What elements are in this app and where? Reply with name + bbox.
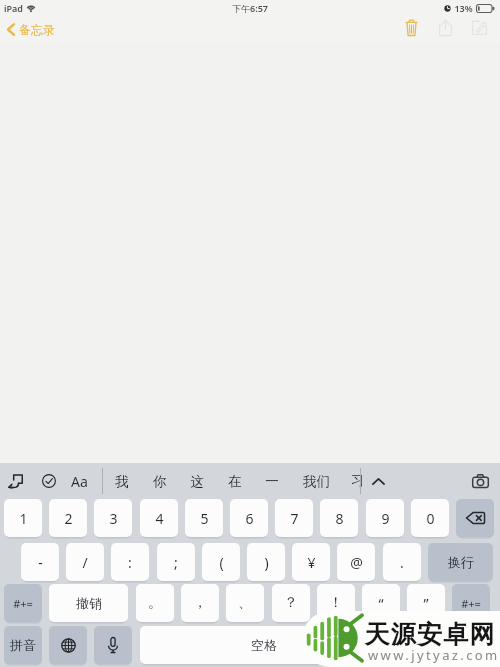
staticText: 备忘录 [19,22,55,37]
button[interactable]: 拼音 [4,626,42,664]
staticText: ; [174,553,178,572]
button[interactable]: 。 [136,584,174,622]
button[interactable]: ！ [317,584,355,622]
button[interactable]: 撤销 [49,584,128,622]
staticText: iPad [4,2,23,14]
staticText: - [38,553,43,572]
button[interactable]: ？ [272,584,310,622]
button[interactable]: : [111,543,149,581]
staticText: Aa [71,472,88,491]
button[interactable]: 空格 [140,626,388,664]
staticText: 、 [238,594,252,612]
staticText: #+= [13,596,33,611]
button[interactable]: / [66,543,104,581]
button[interactable]: Camera [460,463,500,499]
staticText: ” [423,594,429,613]
button[interactable]: ， [181,584,219,622]
button[interactable]: 我们 [299,463,333,499]
staticText: : [128,553,132,572]
staticText: 天源安卓网 [364,619,495,650]
staticText: 2 [64,509,73,528]
button[interactable] [456,499,494,537]
staticText: 4 [155,509,164,528]
button[interactable]: 你 [141,463,178,499]
staticText: 7 [290,509,299,528]
button[interactable]: ) [247,543,285,581]
button[interactable]: Aa [64,463,95,499]
button[interactable] [395,626,442,664]
staticText: 这 [190,473,204,490]
staticText: 我们 [303,473,330,490]
button[interactable]: 换行 [428,543,493,581]
staticText: ！ [329,594,343,612]
button[interactable]: 3 [94,499,132,537]
staticText: #+= [461,596,481,611]
staticText: 你 [153,473,167,490]
staticText: ) [264,553,269,572]
staticText: 1 [19,509,28,528]
button[interactable]: Delete [396,15,426,43]
staticText: 0 [426,509,435,528]
staticText: 一 [265,473,279,490]
button[interactable]: “ [362,584,400,622]
button[interactable]: ” [407,584,445,622]
staticText: 在 [228,473,242,490]
button[interactable]: 9 [366,499,404,537]
button[interactable] [94,626,132,664]
button[interactable]: ; [157,543,195,581]
staticText: 3 [109,509,118,528]
staticText: . [400,553,404,572]
staticText: 我 [115,473,129,490]
staticText: 撤销 [76,595,102,611]
button[interactable]: Undo [0,463,31,499]
button[interactable]: 7 [275,499,313,537]
staticText: 。 [148,594,162,612]
staticText: / [82,553,88,572]
button[interactable]: New note [464,15,494,43]
button[interactable]: 1 [4,499,42,537]
staticText: ( [219,553,224,572]
staticText: 下午6:57 [232,2,268,14]
button[interactable]: Share [430,15,460,43]
staticText: 6 [245,509,254,528]
button[interactable]: Checklist [33,463,64,499]
button[interactable]: 8 [320,499,358,537]
staticText: 空格 [251,637,277,653]
button[interactable]: @ [337,543,375,581]
button[interactable]: 备忘录 [0,22,63,37]
button[interactable]: 6 [230,499,268,537]
staticText: 8 [335,509,344,528]
button[interactable]: #+= [4,584,42,622]
button[interactable]: #+= [452,584,490,622]
button[interactable]: 4 [140,499,178,537]
button[interactable]: 5 [185,499,223,537]
button[interactable]: - [21,543,59,581]
button[interactable]: Expand suggestions [362,463,394,499]
staticText: ¥ [307,553,316,572]
staticText: www.jytyaz.com [368,646,500,664]
button[interactable]: 在 [216,463,253,499]
button[interactable]: ¥ [292,543,330,581]
staticText: 5 [200,509,209,528]
button[interactable]: . [383,543,421,581]
button[interactable] [49,626,87,664]
staticText: ？ [284,594,298,612]
staticText: ， [193,594,207,612]
button[interactable]: 这 [178,463,215,499]
staticText: “ [378,594,384,613]
staticText: 换行 [448,554,474,570]
staticText: @ [350,553,363,572]
staticText: 习 [352,472,361,489]
button[interactable]: 一 [253,463,290,499]
staticText: 拼音 [10,637,36,653]
button[interactable]: 0 [411,499,449,537]
button[interactable]: 我 [103,463,140,499]
button[interactable]: 、 [226,584,264,622]
button[interactable]: ( [202,543,240,581]
staticText: 9 [381,509,390,528]
button[interactable]: 2 [49,499,87,537]
staticText: 13% [454,2,473,14]
